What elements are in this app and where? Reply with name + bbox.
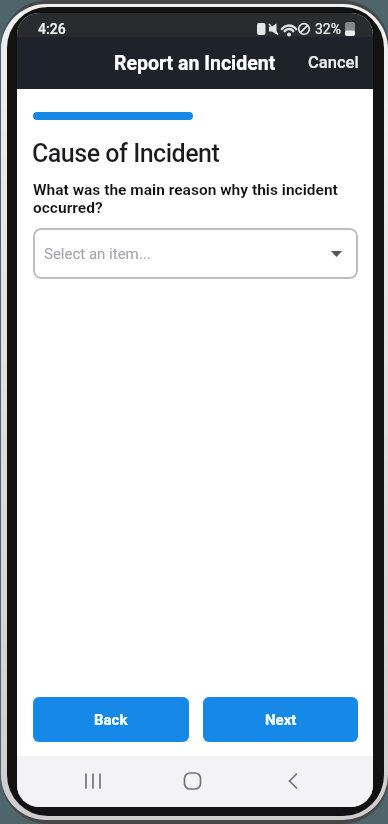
staticText: 32% [315,21,341,37]
staticText: Next [265,711,297,729]
staticText: Back [94,711,128,729]
button[interactable]: Cancel [308,53,359,72]
button[interactable]: Select an item... [33,228,358,279]
button[interactable]: Next [203,697,358,742]
staticText: Select an item... [44,245,151,263]
staticText: Cancel [308,53,359,72]
staticText: 4:26 [38,21,66,37]
staticText: Cause of Incident [32,139,220,168]
staticText: What was the main reason why this incide… [33,181,338,217]
button[interactable]: Back [33,697,189,742]
staticText: Report an Incident [114,52,276,75]
